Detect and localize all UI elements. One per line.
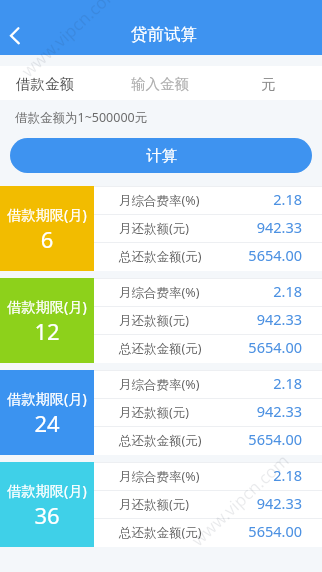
button[interactable]: 总还款金额(元)	[94, 334, 322, 362]
staticText: 总还款金额(元)	[119, 432, 202, 449]
button[interactable]: 总还款金额(元)	[94, 242, 322, 270]
staticText: 24	[0, 408, 94, 438]
staticText: 借款期限(月)	[0, 205, 94, 224]
staticText: 月综合费率(%)	[119, 376, 200, 393]
staticText: 借款期限(月)	[0, 481, 94, 500]
staticText: 借款金额	[16, 75, 74, 93]
button[interactable]: 借款金额	[0, 66, 322, 100]
staticText: 942.33	[94, 493, 302, 513]
staticText: 5654.00	[94, 521, 302, 541]
button[interactable]: Back	[0, 13, 38, 59]
button[interactable]: 借款期限(月)	[0, 186, 94, 271]
staticText: 2.18	[94, 189, 302, 209]
staticText: 总还款金额(元)	[119, 340, 202, 357]
staticText: 总还款金额(元)	[119, 248, 202, 265]
staticText: 借款期限(月)	[0, 389, 94, 408]
staticText: 942.33	[94, 309, 302, 329]
button[interactable]: 月综合费率(%)	[94, 278, 322, 306]
button[interactable]: 月综合费率(%)	[94, 462, 322, 490]
staticText: 2.18	[94, 281, 302, 301]
button[interactable]: 总还款金额(元)	[94, 426, 322, 454]
staticText: 月还款额(元)	[119, 496, 190, 513]
staticText: 2.18	[94, 465, 302, 485]
button[interactable]: 月还款额(元)	[94, 398, 322, 426]
staticText: 月还款额(元)	[119, 404, 190, 421]
staticText: 月综合费率(%)	[119, 192, 200, 209]
staticText: 月还款额(元)	[119, 312, 190, 329]
button[interactable]: 月还款额(元)	[94, 306, 322, 334]
button[interactable]: 月综合费率(%)	[94, 370, 322, 398]
staticText: 5654.00	[94, 337, 302, 357]
staticText: 借款期限(月)	[0, 297, 94, 316]
staticText: 942.33	[94, 401, 302, 421]
staticText: 5654.00	[94, 245, 302, 265]
button[interactable]: 计算	[10, 138, 312, 173]
staticText: 月综合费率(%)	[119, 468, 200, 485]
button[interactable]: 借款期限(月)	[0, 370, 94, 455]
button[interactable]: 月综合费率(%)	[94, 186, 322, 214]
button[interactable]: 借款期限(月)	[0, 278, 94, 363]
button[interactable]: 月还款额(元)	[94, 490, 322, 518]
staticText: 6	[0, 224, 94, 254]
staticText: 计算	[146, 146, 177, 166]
staticText: 月还款额(元)	[119, 220, 190, 237]
staticText: 借款金额为1~500000元	[15, 109, 148, 126]
staticText: 贷前试算	[131, 24, 197, 45]
staticText: 元	[261, 75, 276, 93]
button[interactable]: 月还款额(元)	[94, 214, 322, 242]
button[interactable]: 总还款金额(元)	[94, 518, 322, 546]
staticText: 5654.00	[94, 429, 302, 449]
staticText: 36	[0, 500, 94, 530]
staticText: 2.18	[94, 373, 302, 393]
staticText: 12	[0, 316, 94, 346]
staticText: 总还款金额(元)	[119, 524, 202, 541]
staticText: 月综合费率(%)	[119, 284, 200, 301]
button[interactable]: 借款期限(月)	[0, 462, 94, 547]
staticText: 942.33	[94, 217, 302, 237]
staticText: 输入金额	[131, 75, 189, 93]
